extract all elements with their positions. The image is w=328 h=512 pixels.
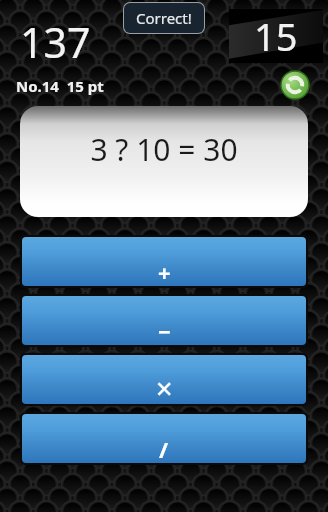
staticText: 137 xyxy=(20,14,91,70)
staticText: / xyxy=(159,434,169,463)
button[interactable]: Score xyxy=(20,14,91,70)
button[interactable]: Multiply xyxy=(22,355,306,404)
button[interactable]: Timer xyxy=(229,9,323,63)
staticText: − xyxy=(158,316,171,345)
staticText: Correct! xyxy=(136,8,192,28)
button[interactable]: Minus xyxy=(22,296,306,345)
staticText: 15 xyxy=(254,10,298,62)
button[interactable]: Plus xyxy=(22,237,306,286)
staticText: 3 ? 10 = 30 xyxy=(90,129,238,170)
button[interactable]: Divide xyxy=(22,414,306,463)
staticText: + xyxy=(158,257,171,286)
staticText: ✕ xyxy=(155,377,174,403)
button[interactable]: Refresh xyxy=(281,71,309,99)
staticText: No.14 15 pt xyxy=(16,76,104,96)
button[interactable]: Correct! xyxy=(124,3,204,33)
button[interactable]: 3 ? 10 = 30 xyxy=(20,106,308,217)
